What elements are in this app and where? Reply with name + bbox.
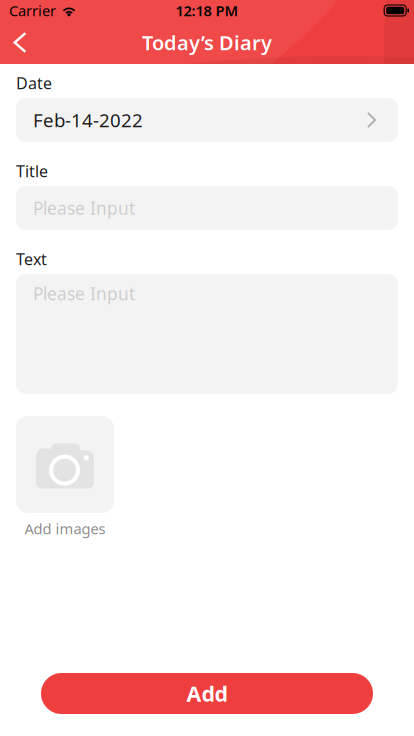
staticText: 12:18 PM [175, 1, 238, 20]
button[interactable]: Please Input [16, 274, 398, 394]
button[interactable]: Back [0, 21, 44, 64]
staticText: Carrier [9, 1, 56, 20]
staticText: Date [16, 72, 52, 94]
button[interactable]: Feb-14-2022 [16, 98, 398, 142]
button[interactable]: Add [41, 673, 373, 714]
staticText: Today’s Diary [142, 29, 272, 56]
staticText: Add images [24, 519, 105, 538]
staticText: Please Input [33, 196, 135, 219]
staticText: Text [16, 248, 47, 270]
staticText: Title [16, 160, 48, 182]
button[interactable]: Please Input [16, 186, 398, 230]
staticText: Please Input [33, 282, 135, 305]
staticText: Add [186, 679, 227, 708]
staticText: Feb-14-2022 [33, 108, 143, 132]
button[interactable]: Add images [16, 416, 114, 535]
